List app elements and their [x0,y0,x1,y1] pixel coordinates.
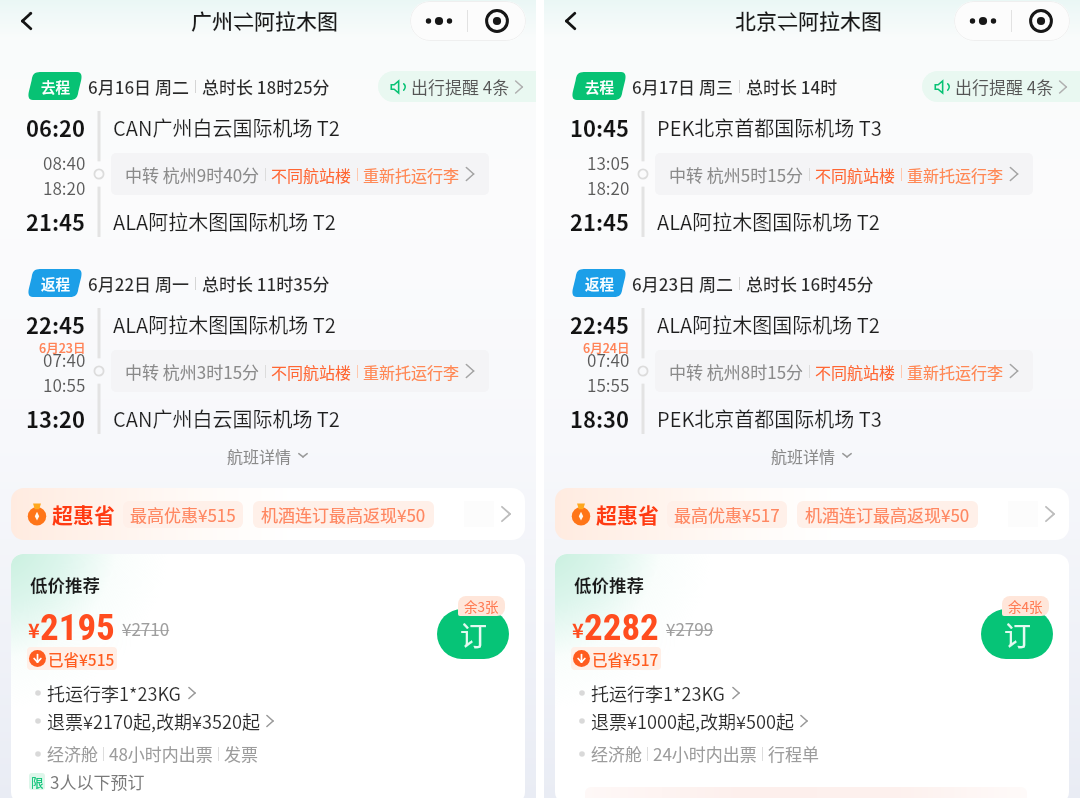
staticText: 低价推荐 [30,572,100,597]
staticText: 6月23日 [39,338,86,356]
staticText: 限 [31,773,44,790]
staticText: 13:05 [587,150,630,175]
staticText: CAN广州白云国际机场 T2 [113,113,340,142]
staticText: 行程单 [768,741,819,766]
staticText: 总时长 11时35分 [202,271,330,296]
staticText: 出行提醒 4条 [955,74,1054,99]
staticText: 不同航站楼 [815,360,896,383]
staticText: 去程 [41,76,70,97]
staticText: 3人以下预订 [50,769,145,794]
staticText: 6月24日 [583,338,630,356]
button[interactable]: 出行提醒 4条 [378,71,536,102]
button[interactable]: 订 [437,609,509,659]
staticText: 航班详情 [227,444,292,467]
staticText: 48小时内出票 [109,741,213,766]
button[interactable]: 航班详情 [544,443,1080,467]
staticText: 返程 [585,273,614,294]
button[interactable]: 超惠省 [11,488,525,540]
staticText: 中转 杭州5时15分 [669,162,804,187]
staticText: 18:20 [587,175,630,200]
button[interactable]: More [410,1,467,41]
staticText: 总时长 14时 [746,74,838,99]
staticText: ALA阿拉木图国际机场 T2 [113,310,336,339]
staticText: 不同航站楼 [271,360,352,383]
staticText: ¥2799 [666,616,714,641]
staticText: 已省¥515 [48,648,115,670]
staticText: 22:45 [26,308,86,340]
staticText: 6月16日 周二 [88,74,189,99]
staticText: 经济舱 [47,741,98,766]
staticText: 15:55 [587,372,630,397]
staticText: 余4张 [1008,596,1043,616]
staticText: 中转 杭州8时15分 [669,359,804,384]
button[interactable]: 低价推荐 [11,554,525,798]
staticText: 经济舱 [591,741,642,766]
button[interactable]: 中转 杭州3时15分 [111,350,489,392]
staticText: 21:45 [570,205,630,237]
staticText: 13:20 [26,402,86,434]
button[interactable]: 出行提醒 4条 [922,71,1080,102]
staticText: 中转 杭州9时40分 [125,162,260,187]
button[interactable]: Location [468,1,526,41]
staticText: 10:55 [43,372,86,397]
button[interactable]: 订 [981,609,1053,659]
staticText: 托运行李1*23KG [591,680,726,706]
staticText: 订 [1004,615,1031,654]
staticText: 返程 [41,273,70,294]
staticText: 不同航站楼 [271,163,352,186]
staticText: 2195 [40,606,115,649]
staticText: ¥ [28,615,40,644]
staticText: 不同航站楼 [815,163,896,186]
button[interactable]: Location [1012,1,1070,41]
staticText: 中转 杭州3时15分 [125,359,260,384]
staticText: 24小时内出票 [653,741,757,766]
staticText: 21:45 [26,205,86,237]
staticText: 10:45 [570,111,630,143]
button[interactable]: 中转 杭州8时15分 [655,350,1033,392]
staticText: 18:30 [570,402,630,434]
staticText: 2282 [584,606,659,649]
button[interactable]: 中转 杭州9时40分 [111,153,489,195]
button[interactable]: 航班详情 [0,443,536,467]
button[interactable]: Back [552,2,590,40]
staticText: 6月23日 周二 [632,271,733,296]
staticText: 重新托运行李 [907,163,1004,186]
staticText: 超惠省 [596,499,659,529]
staticText: 出行提醒 4条 [411,74,510,99]
staticText: 重新托运行李 [363,360,460,383]
staticText: 发票 [224,741,258,766]
staticText: 22:45 [570,308,630,340]
staticText: 重新托运行李 [363,163,460,186]
button[interactable]: More [954,1,1011,41]
staticText: 07:40 [587,347,630,372]
staticText: 07:40 [43,347,86,372]
staticText: 已省¥517 [592,648,659,670]
staticText: 06:20 [26,111,86,143]
staticText: 去程 [585,76,614,97]
button[interactable]: Back [8,2,46,40]
staticText: 重新托运行李 [907,360,1004,383]
staticText: PEK北京首都国际机场 T3 [657,404,882,433]
staticText: 退票¥1000起,改期¥500起 [591,708,794,734]
staticText: 超惠省 [52,499,115,529]
staticText: 最高优惠¥517 [674,502,780,527]
staticText: ALA阿拉木图国际机场 T2 [113,207,336,236]
button[interactable]: 中转 杭州5时15分 [655,153,1033,195]
staticText: 6月22日 周一 [88,271,189,296]
staticText: 08:40 [43,150,86,175]
staticText: 18:20 [43,175,86,200]
staticText: 低价推荐 [574,572,644,597]
staticText: 北京⇌阿拉木图 [735,5,882,35]
staticText: 机酒连订最高返现¥50 [805,502,970,527]
staticText: 托运行李1*23KG [47,680,182,706]
staticText: 总时长 16时45分 [746,271,874,296]
staticText: ¥ [572,615,584,644]
button[interactable]: 超惠省 [555,488,1069,540]
staticText: 航班详情 [771,444,836,467]
button[interactable]: 低价推荐 [555,554,1069,798]
staticText: CAN广州白云国际机场 T2 [113,404,340,433]
staticText: 订 [460,615,487,654]
staticText: 余3张 [464,596,499,616]
staticText: ALA阿拉木图国际机场 T2 [657,207,880,236]
staticText: ALA阿拉木图国际机场 T2 [657,310,880,339]
